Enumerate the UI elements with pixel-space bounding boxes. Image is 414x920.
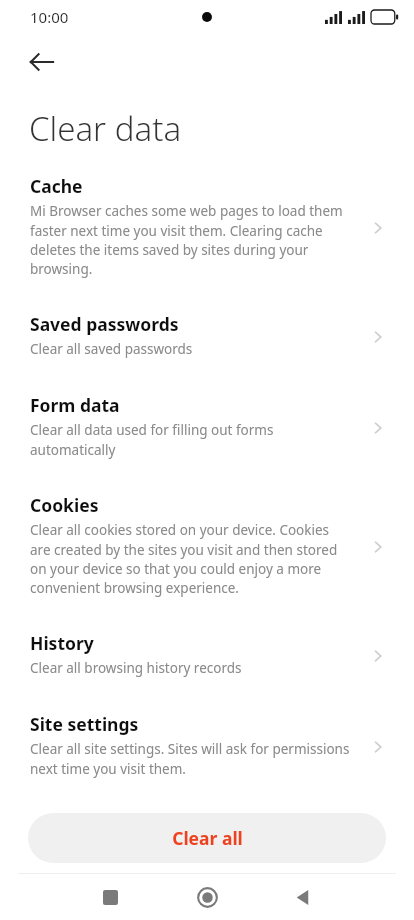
button[interactable]: Back xyxy=(18,38,66,86)
button[interactable]: Form data xyxy=(0,385,414,485)
button[interactable]: Clear all xyxy=(28,813,386,863)
staticText: 10:00 xyxy=(30,7,69,27)
button[interactable]: Back xyxy=(279,874,327,920)
staticText: Clear data xyxy=(29,106,182,151)
button[interactable]: Site settings xyxy=(0,704,414,804)
staticText: History xyxy=(30,631,94,655)
staticText: Saved passwords xyxy=(30,312,179,336)
staticText: Clear all browsing history records xyxy=(30,659,242,677)
button[interactable]: Recent apps xyxy=(86,874,134,920)
button[interactable]: History xyxy=(0,623,414,704)
staticText: Mi Browser caches some web pages to load… xyxy=(30,202,352,278)
staticText: Clear all data used for filling out form… xyxy=(30,421,352,459)
staticText: Form data xyxy=(30,393,120,417)
staticText: Clear all site settings. Sites will ask … xyxy=(30,740,352,778)
button[interactable]: Saved passwords xyxy=(0,304,414,385)
button[interactable]: Home xyxy=(183,874,231,920)
staticText: Clear all cookies stored on your device.… xyxy=(30,521,352,597)
staticText: Clear all saved passwords xyxy=(30,340,193,358)
staticText: Clear all xyxy=(172,826,243,850)
staticText: Cookies xyxy=(30,493,99,517)
button[interactable]: Cache xyxy=(0,166,414,304)
button[interactable]: Cookies xyxy=(0,485,414,623)
staticText: Cache xyxy=(30,174,83,198)
staticText: Site settings xyxy=(30,712,139,736)
